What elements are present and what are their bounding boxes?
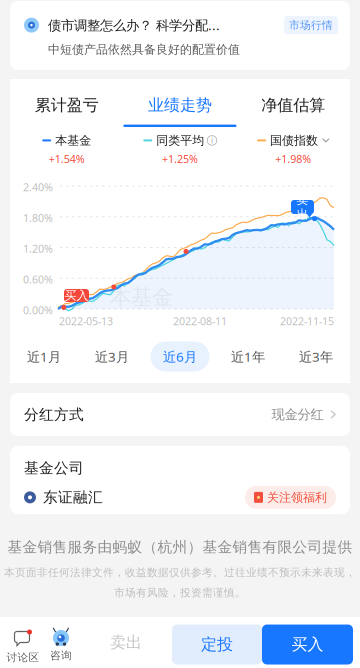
staticText: 1.20% <box>23 241 53 256</box>
button[interactable]: 近1月 <box>10 330 78 383</box>
button[interactable]: 近3月 <box>78 330 146 383</box>
button[interactable]: 关注领福利 <box>245 486 336 509</box>
staticText: 2022-11-15 <box>280 314 334 328</box>
button[interactable]: 净值估算 <box>237 79 350 127</box>
staticText: +1.25% <box>162 152 198 166</box>
staticText: 中短债产品依然具备良好的配置价值 <box>48 42 240 57</box>
staticText: 近6月 <box>163 348 197 365</box>
staticText: 买入 <box>291 635 323 654</box>
staticText: i <box>211 135 213 146</box>
button[interactable]: 累计盈亏 <box>10 79 123 127</box>
button[interactable]: 近6月 <box>146 330 214 383</box>
staticText: 2022-05-13 <box>59 314 113 328</box>
staticText: 基金公司 <box>24 459 84 477</box>
staticText: 现金分红 <box>271 406 323 423</box>
staticText: 净值估算 <box>261 95 325 115</box>
button[interactable]: 业绩走势 <box>123 79 237 127</box>
staticText: 市场有风险，投资需谨慎。 <box>114 586 246 599</box>
staticText: 1.80% <box>23 211 53 225</box>
staticText: 咨询 <box>50 649 72 662</box>
button[interactable]: 分红方式 <box>10 393 350 436</box>
staticText: 0.00% <box>23 303 53 317</box>
staticText: 卖出 <box>296 192 308 222</box>
staticText: 本基金 <box>110 284 173 310</box>
staticText: 累计盈亏 <box>35 95 99 115</box>
button[interactable]: 讨论区 <box>0 617 46 668</box>
staticText: 近3年 <box>299 348 333 365</box>
staticText: +1.54% <box>49 152 85 166</box>
staticText: 2.40% <box>23 180 53 194</box>
button[interactable]: 卖出 <box>100 617 152 668</box>
staticText: 东证融汇 <box>43 488 103 506</box>
staticText: 分红方式 <box>24 405 84 423</box>
button[interactable]: 咨询 <box>38 617 84 668</box>
staticText: +1.98% <box>275 152 311 166</box>
staticText: 业绩走势 <box>148 95 212 115</box>
button[interactable]: 债市调整怎么办？ 科学分配... <box>10 1 350 70</box>
staticText: 2022-08-11 <box>173 314 227 328</box>
staticText: 本基金 <box>55 133 91 148</box>
button[interactable]: 买入 <box>262 624 353 664</box>
staticText: 卖出 <box>110 633 142 652</box>
staticText: 基金销售服务由蚂蚁（杭州）基金销售有限公司提供 <box>7 538 352 556</box>
staticText: 买入 <box>64 288 88 303</box>
staticText: 关注领福利 <box>267 490 327 505</box>
staticText: 近1年 <box>231 348 265 365</box>
staticText: 本页面非任何法律文件，收益数据仅供参考。过往业绩不预示未来表现， <box>4 566 356 579</box>
staticText: 同类平均 <box>156 133 204 148</box>
staticText: 0.60% <box>23 272 53 286</box>
staticText: 市场行情 <box>289 19 333 32</box>
button[interactable]: 近3年 <box>282 330 350 383</box>
button[interactable]: 定投 <box>172 624 262 664</box>
staticText: 国债指数 <box>270 133 318 148</box>
staticText: 近3月 <box>95 348 129 365</box>
staticText: 定投 <box>201 635 233 654</box>
staticText: 债市调整怎么办？ 科学分配... <box>48 16 220 34</box>
button[interactable]: 近1年 <box>214 330 282 383</box>
staticText: 讨论区 <box>6 651 39 664</box>
staticText: 近1月 <box>27 348 61 365</box>
